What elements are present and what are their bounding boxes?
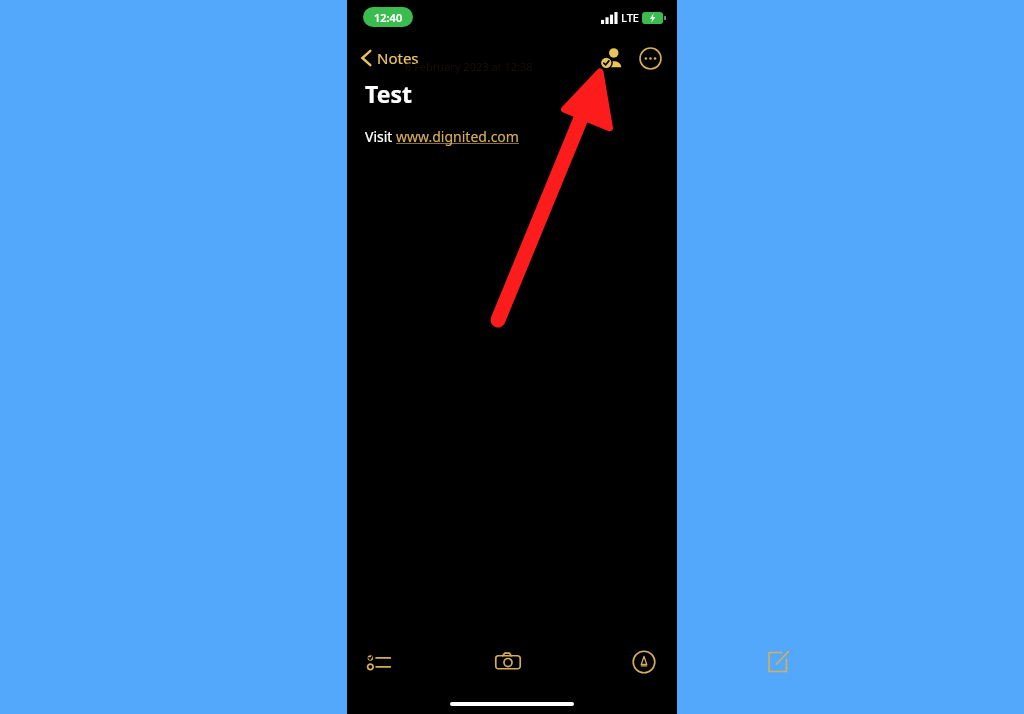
- button[interactable]: New note: [755, 640, 799, 684]
- button[interactable]: Camera: [486, 640, 530, 684]
- button[interactable]: Share note: [595, 41, 629, 75]
- button[interactable]: Checklist: [357, 640, 401, 684]
- staticText: Visit www.dignited.com: [365, 127, 519, 146]
- button[interactable]: More options: [633, 41, 667, 75]
- staticText: Test: [365, 78, 412, 109]
- staticText: Notes: [377, 48, 419, 68]
- staticText: 6 February 2023 at 12:38: [405, 59, 533, 74]
- staticText: LTE: [621, 10, 639, 25]
- button[interactable]: Notes: [357, 44, 423, 72]
- staticText: 12:40: [374, 10, 403, 25]
- button[interactable]: Markup: [622, 640, 666, 684]
